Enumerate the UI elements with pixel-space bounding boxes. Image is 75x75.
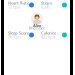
button[interactable]: Sleep Score xyxy=(8,31,34,39)
staticText: Sleep Score xyxy=(8,30,29,36)
staticText: 7h 12m xyxy=(8,34,21,40)
staticText: 8,241 xyxy=(41,4,50,10)
staticText: Member xyxy=(29,25,45,31)
staticText: Alex xyxy=(33,23,41,28)
button[interactable]: Steps xyxy=(41,1,67,9)
staticText: 432 kcal xyxy=(41,34,55,40)
staticText: Heart Rate xyxy=(8,0,29,6)
staticText: 72 bpm xyxy=(8,4,21,10)
staticText: Steps xyxy=(41,0,52,6)
button[interactable]: Heart Rate xyxy=(8,1,34,9)
button[interactable]: Calories xyxy=(41,31,67,39)
staticText: Calories xyxy=(41,30,56,36)
